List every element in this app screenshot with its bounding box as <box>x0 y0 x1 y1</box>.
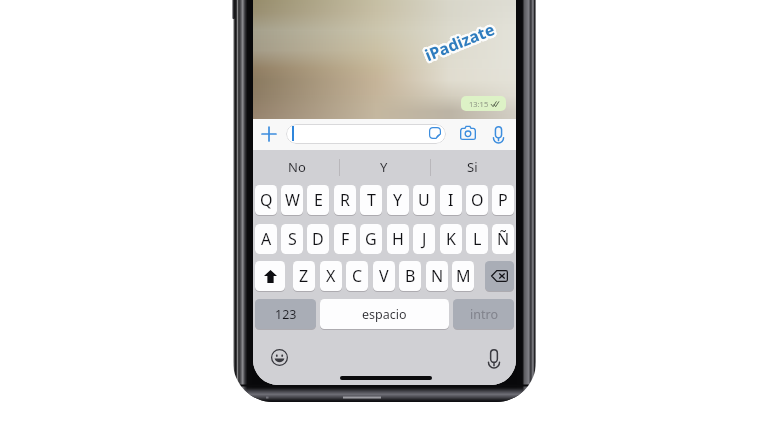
staticText: C <box>352 265 363 287</box>
staticText: iPadizate <box>423 18 500 67</box>
staticText: iPadizate <box>423 16 500 64</box>
staticText: K <box>446 228 456 250</box>
staticText: iPadizate <box>420 16 497 65</box>
button[interactable]: I <box>440 185 462 215</box>
button[interactable]: V <box>373 261 395 291</box>
staticText: No <box>288 158 306 176</box>
button[interactable]: N <box>426 261 448 291</box>
staticText: Y <box>393 189 403 211</box>
button[interactable]: Z <box>293 261 315 291</box>
button[interactable]: C <box>346 261 368 291</box>
staticText: Si <box>467 158 478 176</box>
staticText: W <box>285 189 300 211</box>
staticText: iPadizate <box>419 18 496 66</box>
staticText: iPadizate <box>421 19 498 67</box>
button[interactable]: O <box>466 185 488 215</box>
staticText: iPadizate <box>424 18 501 66</box>
button[interactable]: Camera <box>460 126 476 140</box>
staticText: V <box>379 265 389 287</box>
button[interactable]: Y <box>340 150 428 184</box>
staticText: espacio <box>362 306 407 323</box>
staticText: Q <box>260 189 273 211</box>
staticText: I <box>448 189 454 211</box>
staticText: Z <box>299 265 309 287</box>
button[interactable]: Attach <box>261 126 277 142</box>
button[interactable]: U <box>413 185 435 215</box>
button[interactable]: P <box>492 185 514 215</box>
staticText: iPadizate <box>422 18 498 66</box>
staticText: N <box>431 265 444 287</box>
staticText: iPadizate <box>421 16 498 64</box>
staticText: H <box>392 228 404 250</box>
button[interactable]: intro <box>453 299 514 329</box>
staticText: iPadizate <box>421 17 498 65</box>
staticText: iPadizate <box>421 18 497 66</box>
button[interactable]: T <box>360 185 382 215</box>
button[interactable]: B <box>399 261 421 291</box>
staticText: O <box>471 189 484 211</box>
staticText: iPadizate <box>420 20 497 68</box>
staticText: Y <box>380 158 388 176</box>
staticText: G <box>365 228 377 250</box>
staticText: P <box>498 189 508 211</box>
staticText: iPadizate <box>422 20 499 68</box>
button[interactable]: Si <box>428 150 516 184</box>
staticText: iPadizate <box>423 19 500 67</box>
staticText: iPadizate <box>422 19 499 67</box>
button[interactable]: Shift <box>255 261 285 291</box>
button[interactable]: Q <box>255 185 277 215</box>
staticText: J <box>422 228 427 250</box>
button[interactable]: S <box>281 224 303 254</box>
button[interactable]: Stickers <box>286 124 446 144</box>
staticText: Ñ <box>497 228 510 250</box>
button[interactable]: Emoji keyboard <box>270 348 288 366</box>
staticText: iPadizate <box>420 17 497 65</box>
button[interactable]: Voice message <box>493 126 504 142</box>
staticText: T <box>367 189 376 211</box>
button[interactable]: F <box>334 224 356 254</box>
staticText: 13:15 <box>469 99 489 109</box>
button[interactable]: Dictation <box>485 349 503 367</box>
staticText: R <box>340 189 350 211</box>
button[interactable]: No <box>253 150 340 184</box>
button[interactable]: M <box>452 261 474 291</box>
staticText: iPadizate <box>423 17 500 65</box>
button[interactable]: W <box>281 185 303 215</box>
staticText: M <box>456 265 471 287</box>
button[interactable]: H <box>387 224 409 254</box>
staticText: L <box>473 228 482 250</box>
staticText: iPadizate <box>421 20 498 68</box>
button[interactable]: Stickers <box>429 127 441 139</box>
button[interactable]: R <box>334 185 356 215</box>
button[interactable]: Y <box>387 185 409 215</box>
button[interactable]: D <box>307 224 329 254</box>
staticText: iPadizate <box>422 16 499 64</box>
staticText: iPadizate <box>422 17 499 65</box>
staticText: A <box>261 228 272 250</box>
staticText: B <box>405 265 416 287</box>
button[interactable]: espacio <box>320 299 449 329</box>
button[interactable]: Backspace <box>485 261 514 291</box>
staticText: intro <box>470 306 498 323</box>
button[interactable]: 13:15 <box>461 96 506 111</box>
button[interactable]: X <box>320 261 342 291</box>
button[interactable]: L <box>466 224 488 254</box>
button[interactable]: G <box>360 224 382 254</box>
staticText: 123 <box>275 306 297 323</box>
staticText: iPadizate <box>422 18 499 66</box>
button[interactable]: K <box>440 224 462 254</box>
staticText: E <box>314 189 323 211</box>
staticText: F <box>341 228 350 250</box>
button[interactable]: A <box>255 224 277 254</box>
staticText: D <box>312 228 324 250</box>
button[interactable]: Ñ <box>492 224 514 254</box>
staticText: X <box>326 265 336 287</box>
button[interactable]: J <box>413 224 435 254</box>
button[interactable]: 123 <box>255 299 316 329</box>
button[interactable]: E <box>307 185 329 215</box>
staticText: iPadizate <box>420 19 497 67</box>
staticText: S <box>288 228 297 250</box>
staticText: U <box>418 189 430 211</box>
